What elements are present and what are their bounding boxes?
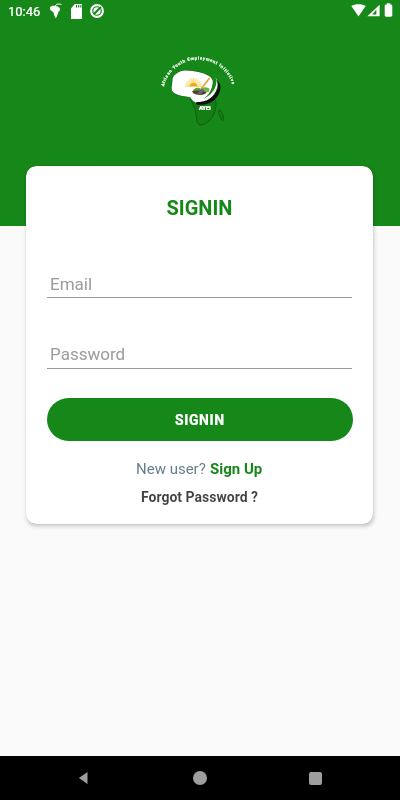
staticText: 10:46 — [8, 4, 41, 19]
button[interactable]: Home — [186, 764, 214, 792]
button[interactable]: Sign Up — [210, 460, 263, 478]
button[interactable]: Forgot Password ? — [26, 489, 373, 505]
staticText: SIGNIN — [175, 412, 225, 428]
button[interactable]: Back — [70, 764, 98, 792]
staticText: SIGNIN — [26, 196, 373, 219]
staticText: Password — [50, 344, 126, 364]
button[interactable]: Recent apps — [301, 764, 329, 792]
staticText: Email — [50, 274, 93, 294]
button[interactable]: SIGNIN — [47, 398, 353, 441]
staticText: New user? — [136, 460, 210, 478]
